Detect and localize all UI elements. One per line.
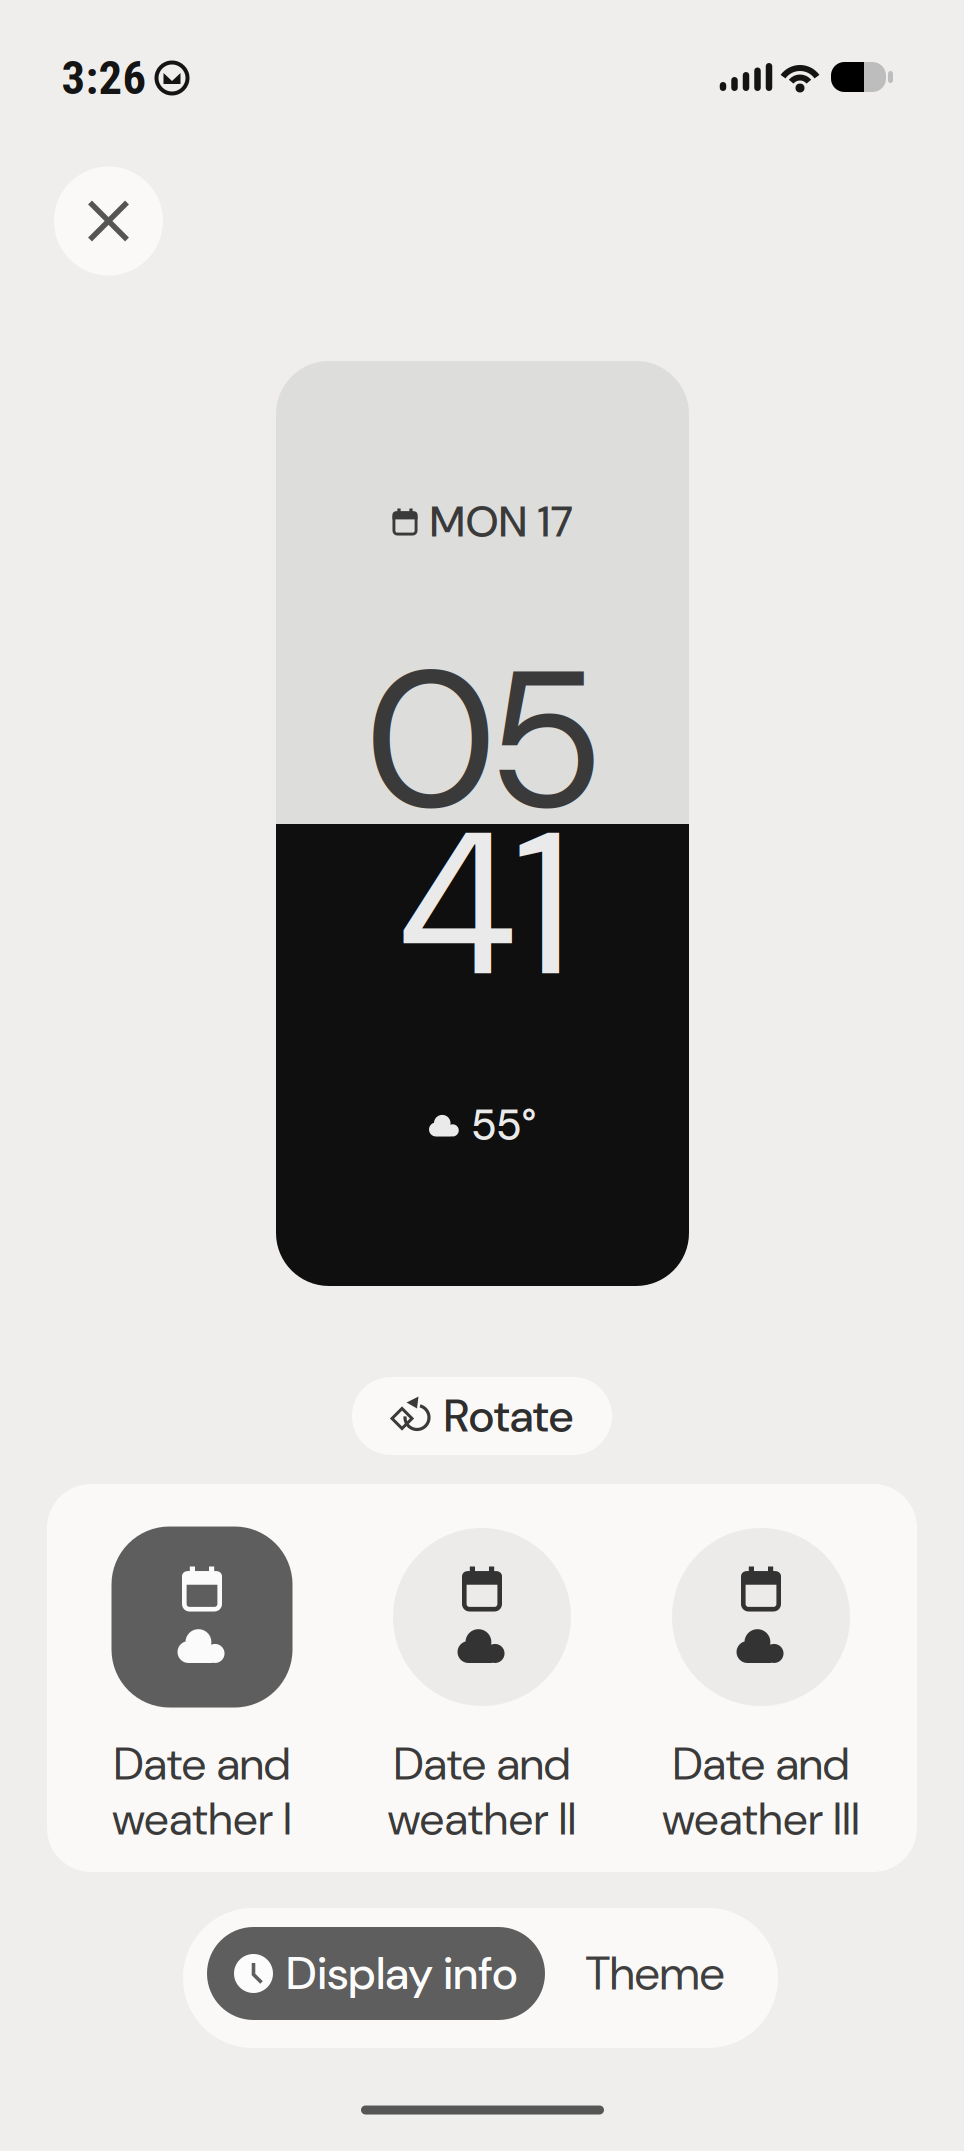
staticText: Display info (286, 1944, 518, 2003)
staticText: 05 (366, 616, 598, 866)
button[interactable]: Date and (342, 1484, 622, 1864)
staticText: Date and (113, 1734, 290, 1793)
staticText: Date and (393, 1734, 570, 1793)
staticText: Theme (585, 1943, 724, 2004)
button[interactable]: Display info (207, 1927, 545, 2020)
staticText: 55° (471, 1097, 536, 1153)
staticText: weather I (112, 1789, 292, 1848)
button[interactable]: Close (54, 166, 163, 275)
staticText: MON 17 (429, 494, 573, 550)
staticText: 3:26 (61, 51, 146, 105)
staticText: 41 (398, 775, 568, 1035)
staticText: Rotate (443, 1386, 573, 1445)
staticText: Date and (672, 1734, 849, 1793)
staticText: weather III (662, 1789, 860, 1848)
staticText: weather II (387, 1789, 576, 1848)
button[interactable]: Rotate (352, 1377, 612, 1455)
button[interactable]: Date and (621, 1484, 901, 1864)
button[interactable]: Date and (62, 1484, 342, 1864)
button[interactable]: Theme (565, 1927, 745, 2020)
